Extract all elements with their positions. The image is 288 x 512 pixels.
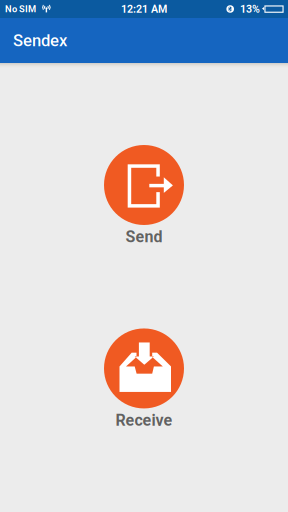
staticText: Send <box>125 227 162 246</box>
button[interactable]: Send <box>104 145 184 246</box>
button[interactable]: Receive <box>104 328 184 430</box>
staticText: 12:21 AM <box>121 3 167 15</box>
staticText: Sendex <box>13 31 67 50</box>
staticText: 13% <box>240 3 260 15</box>
staticText: No SIM <box>5 3 36 14</box>
staticText: Receive <box>115 411 172 430</box>
